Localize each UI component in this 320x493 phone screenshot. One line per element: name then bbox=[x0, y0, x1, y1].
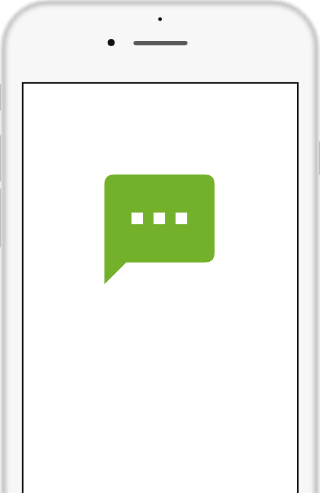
button[interactable]: Messaging app on phone bbox=[0, 0, 320, 493]
